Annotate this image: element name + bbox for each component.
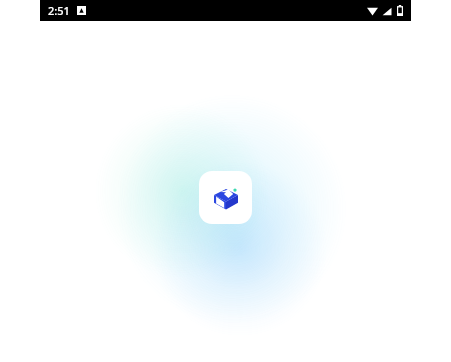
button[interactable]: App logo	[199, 171, 252, 224]
staticText: 2:51	[48, 3, 70, 18]
